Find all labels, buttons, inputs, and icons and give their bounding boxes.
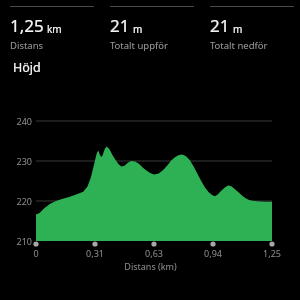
staticText: Distans (km) — [124, 260, 177, 272]
staticText: Höjd — [13, 59, 41, 76]
staticText: km — [47, 22, 62, 36]
button[interactable]: 1,25 — [0, 0, 100, 52]
staticText: Totalt uppför — [110, 39, 168, 52]
staticText: 1,25 — [10, 14, 44, 37]
staticText: m — [233, 22, 243, 36]
button[interactable]: 21 — [100, 0, 200, 52]
staticText: Distans — [10, 39, 44, 52]
staticText: 21 — [210, 14, 230, 37]
staticText: 210 — [16, 235, 32, 247]
staticText: 0,94 — [204, 247, 222, 259]
staticText: m — [133, 22, 143, 36]
staticText: 240 — [16, 115, 32, 127]
staticText: 0,31 — [86, 247, 104, 259]
button[interactable]: 21 — [200, 0, 300, 52]
staticText: 0,63 — [145, 247, 163, 259]
button[interactable]: Elevation chart — [0, 82, 300, 272]
staticText: Totalt nedför — [210, 39, 268, 52]
staticText: 220 — [16, 195, 32, 207]
staticText: 230 — [16, 155, 32, 167]
staticText: 21 — [110, 14, 130, 37]
staticText: 1,25 — [263, 247, 281, 259]
staticText: 0 — [33, 247, 39, 259]
